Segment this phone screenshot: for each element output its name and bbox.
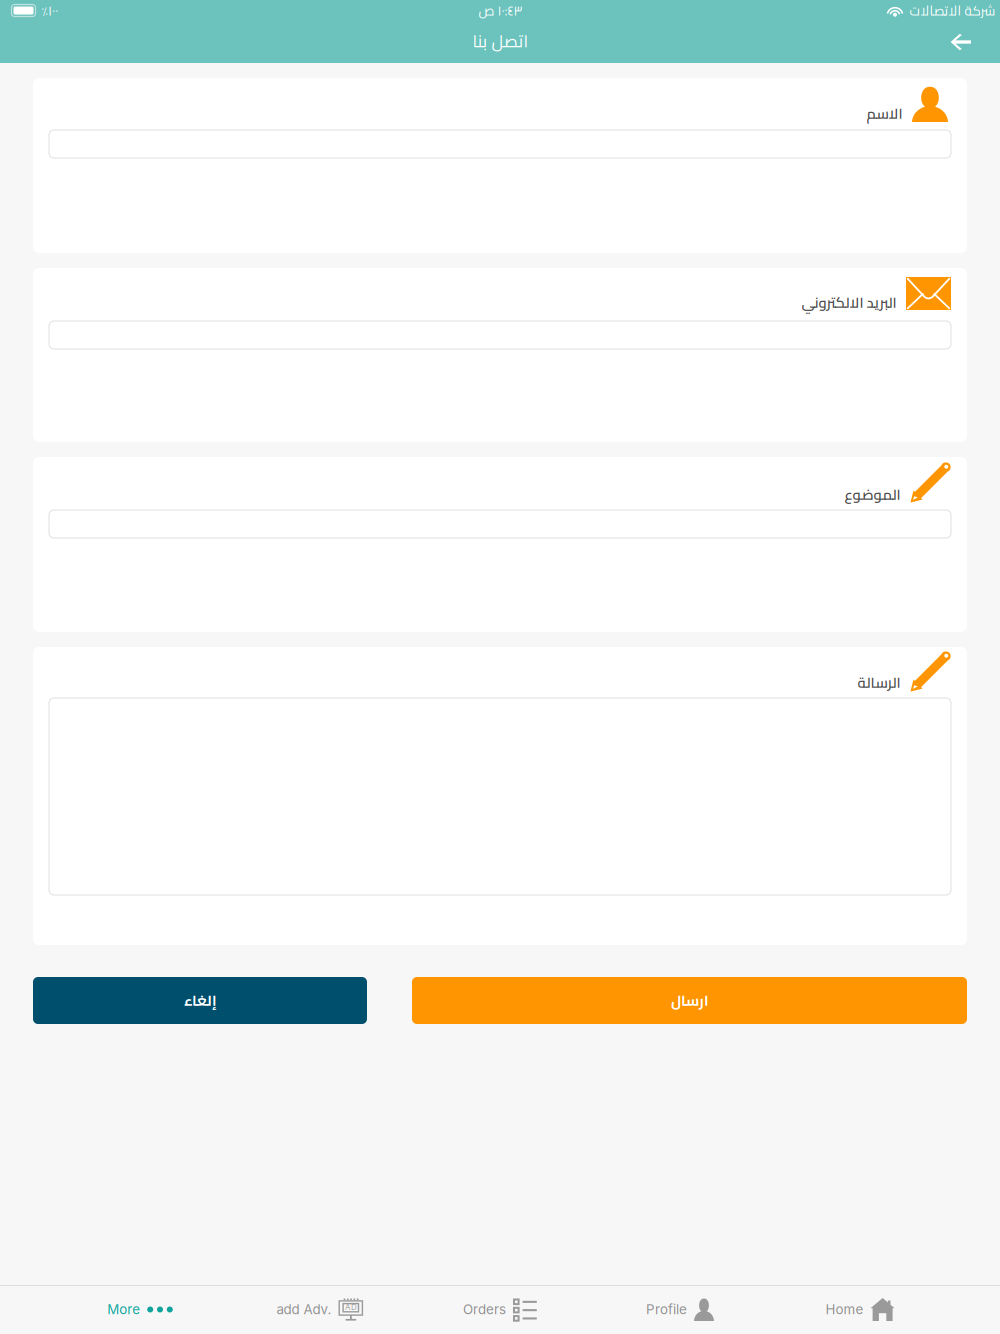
staticText: add Adv. xyxy=(276,1301,331,1317)
button[interactable]: add Adv. xyxy=(230,1285,410,1334)
staticText: ارسال xyxy=(670,987,708,1014)
staticText: Orders xyxy=(463,1301,506,1317)
staticText: إلغاء xyxy=(183,987,216,1014)
staticText: Profile xyxy=(646,1301,687,1317)
staticText: البريد الالكتروني xyxy=(801,288,896,316)
staticText: ٪١٠٠ xyxy=(41,0,58,23)
button[interactable]: إلغاء xyxy=(33,977,367,1024)
staticText: AD xyxy=(345,1302,357,1312)
staticText: Home xyxy=(825,1301,863,1317)
staticText: اتصل بنا xyxy=(472,25,528,57)
staticText: الاسم xyxy=(866,99,902,127)
staticText: الموضوع xyxy=(844,480,900,508)
staticText: الرسالة xyxy=(857,668,900,696)
staticText: ١٠:٤٣ ص xyxy=(478,0,522,23)
button[interactable]: Home xyxy=(770,1285,950,1334)
button[interactable]: More xyxy=(50,1285,230,1334)
staticText: More xyxy=(107,1301,140,1317)
button[interactable]: ارسال xyxy=(412,977,967,1024)
button[interactable]: رجوع xyxy=(934,23,1000,60)
button[interactable]: Profile xyxy=(590,1285,770,1334)
button[interactable]: Orders xyxy=(410,1285,590,1334)
staticText: شركة الاتصالات xyxy=(909,0,995,23)
